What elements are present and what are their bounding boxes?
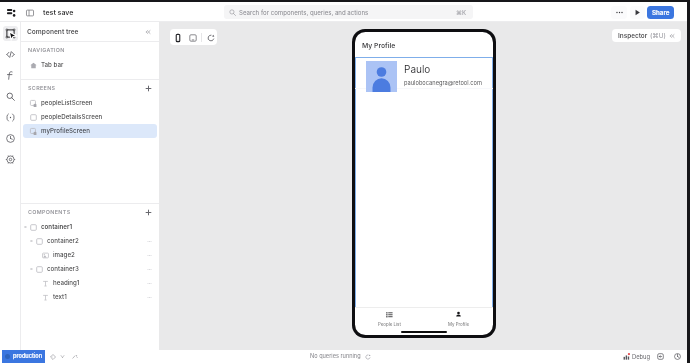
staticText: myProfileScreen bbox=[41, 127, 90, 135]
button[interactable]: peopleDetailsScreen bbox=[23, 110, 157, 124]
button[interactable]: History bbox=[3, 131, 18, 146]
staticText: production bbox=[13, 353, 43, 360]
button[interactable]: Add bbox=[143, 207, 154, 218]
button[interactable]: Search bbox=[3, 89, 18, 104]
staticText: test save bbox=[43, 8, 74, 16]
staticText: No queries running bbox=[310, 353, 361, 360]
staticText: Inspector bbox=[618, 32, 648, 40]
staticText: (⌘U) bbox=[650, 32, 666, 40]
button[interactable]: Help bbox=[672, 351, 683, 362]
staticText: Share bbox=[652, 9, 670, 17]
button[interactable]: Code bbox=[3, 47, 18, 62]
button[interactable]: container3 bbox=[23, 262, 157, 276]
staticText: My Profile bbox=[448, 322, 470, 327]
staticText: Tab bar bbox=[41, 61, 64, 69]
button[interactable]: Tags bbox=[47, 351, 58, 362]
button[interactable]: text1 bbox=[23, 290, 157, 304]
staticText: Paulo bbox=[404, 63, 431, 75]
staticText: COMPONENTS bbox=[28, 209, 71, 216]
button[interactable]: Add bbox=[143, 83, 154, 94]
button[interactable]: Collapse panel bbox=[142, 26, 153, 37]
button[interactable]: heading1 bbox=[23, 276, 157, 290]
button[interactable]: Toggle panel bbox=[23, 6, 36, 19]
button[interactable]: peopleListScreen bbox=[23, 96, 157, 110]
button[interactable]: image2 bbox=[23, 248, 157, 262]
button[interactable]: More options bbox=[611, 6, 627, 19]
button[interactable]: container2 bbox=[23, 234, 157, 248]
button[interactable]: Shortcuts bbox=[69, 351, 80, 362]
button[interactable]: No queries running bbox=[308, 353, 373, 360]
staticText: container1 bbox=[41, 223, 73, 231]
button[interactable]: Inspector bbox=[612, 29, 681, 42]
staticText: container3 bbox=[47, 265, 79, 273]
staticText: paulobocanegra@retool.com bbox=[404, 79, 482, 86]
button[interactable]: Retool home bbox=[5, 6, 18, 19]
staticText: heading1 bbox=[53, 279, 80, 287]
staticText: container2 bbox=[47, 237, 79, 245]
button[interactable]: Preview app bbox=[630, 6, 645, 19]
staticText: NAVIGATION bbox=[28, 47, 65, 54]
staticText: peopleListScreen bbox=[41, 99, 93, 107]
staticText: Search for components, queries, and acti… bbox=[239, 9, 369, 16]
button[interactable]: production bbox=[2, 350, 45, 363]
button[interactable]: History bbox=[655, 351, 666, 362]
button[interactable]: Phone preview bbox=[171, 31, 184, 44]
staticText: text1 bbox=[53, 293, 67, 301]
button[interactable]: State bbox=[3, 110, 18, 125]
button[interactable]: myProfileScreen bbox=[23, 124, 157, 138]
staticText: peopleDetailsScreen bbox=[41, 113, 103, 121]
button[interactable]: My Profile bbox=[424, 308, 493, 327]
button[interactable]: container1 bbox=[23, 220, 157, 234]
staticText: Component tree bbox=[27, 28, 79, 36]
button[interactable]: Tab bar bbox=[23, 58, 157, 72]
button[interactable]: Functions bbox=[3, 68, 18, 83]
staticText: ⌘K bbox=[456, 9, 467, 16]
button[interactable]: Refresh preview bbox=[204, 31, 217, 44]
button[interactable]: Search for components, queries, and acti… bbox=[224, 5, 473, 19]
staticText: My Profile bbox=[362, 41, 396, 49]
button[interactable]: People List bbox=[355, 308, 424, 327]
staticText: Debug bbox=[632, 353, 651, 360]
button[interactable]: Share bbox=[647, 6, 674, 19]
staticText: People List bbox=[378, 322, 401, 327]
staticText: SCREENS bbox=[28, 85, 56, 92]
button[interactable]: Debug bbox=[621, 353, 653, 360]
button[interactable]: Settings bbox=[3, 152, 18, 167]
staticText: image2 bbox=[53, 251, 75, 259]
button[interactable]: Tablet preview bbox=[186, 31, 199, 44]
button[interactable]: Branch bbox=[58, 352, 67, 361]
button[interactable]: Select tool bbox=[3, 26, 18, 41]
